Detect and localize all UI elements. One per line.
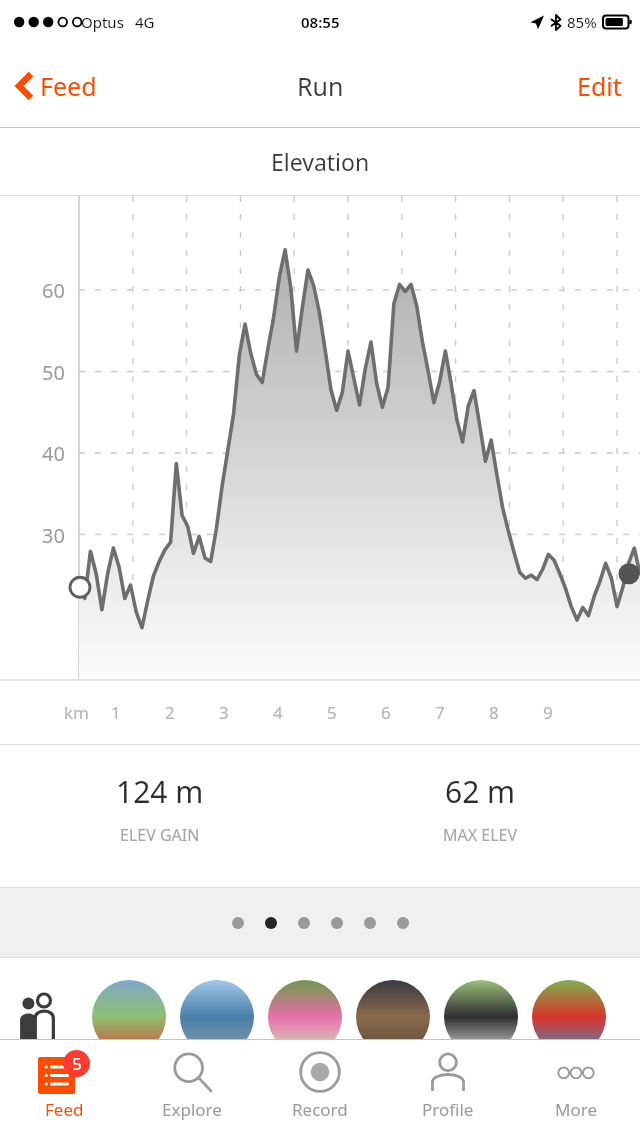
button[interactable] xyxy=(331,917,343,929)
button[interactable]: Athlete xyxy=(532,980,606,1054)
staticText: 5 xyxy=(72,1052,82,1075)
staticText: 124 m xyxy=(116,771,204,812)
staticText: 4G xyxy=(135,12,155,32)
staticText: 08:55 xyxy=(301,12,340,32)
button[interactable]: Athlete xyxy=(356,980,430,1054)
staticText: Explore xyxy=(162,1098,222,1121)
button[interactable]: Athlete xyxy=(180,980,254,1054)
button[interactable]: Feed xyxy=(10,61,103,111)
staticText: 50 xyxy=(42,359,65,386)
button[interactable]: 5 xyxy=(0,1040,128,1136)
staticText: 40 xyxy=(42,440,65,467)
button[interactable]: 62 m xyxy=(320,745,640,873)
staticText: Run xyxy=(297,69,344,103)
staticText: MAX ELEV xyxy=(443,824,518,846)
staticText: Optus xyxy=(81,12,124,32)
staticText: More xyxy=(555,1098,597,1121)
staticText: Edit xyxy=(577,69,622,103)
staticText: 62 m xyxy=(445,771,516,812)
button[interactable] xyxy=(397,917,409,929)
button[interactable]: Record xyxy=(256,1040,384,1136)
staticText: 30 xyxy=(42,522,65,549)
button[interactable] xyxy=(364,917,376,929)
button[interactable]: 124 m xyxy=(0,745,320,873)
button[interactable]: Kudos xyxy=(18,978,80,1040)
button[interactable]: Athlete xyxy=(268,980,342,1054)
staticText: Feed xyxy=(40,69,97,103)
staticText: Record xyxy=(292,1098,348,1121)
staticText: 9 xyxy=(543,701,553,724)
button[interactable]: More xyxy=(512,1040,640,1136)
staticText: 60 xyxy=(42,277,65,304)
staticText: 6 xyxy=(381,701,391,724)
button[interactable]: Edit xyxy=(571,61,628,111)
staticText: 1 xyxy=(111,701,121,724)
staticText: km xyxy=(64,701,89,724)
button[interactable]: Athlete xyxy=(444,980,518,1054)
other: Record xyxy=(299,1051,341,1093)
other: Explore xyxy=(171,1051,213,1093)
staticText: 3 xyxy=(219,701,229,724)
button[interactable] xyxy=(298,917,310,929)
button[interactable]: Explore xyxy=(128,1040,256,1136)
button[interactable]: Athlete xyxy=(92,980,166,1054)
staticText: 4 xyxy=(273,701,283,724)
staticText: 2 xyxy=(165,701,175,724)
other: More xyxy=(554,1051,598,1093)
staticText: Elevation xyxy=(271,146,370,177)
staticText: 7 xyxy=(435,701,445,724)
staticText: 85% xyxy=(567,12,597,32)
staticText: ELEV GAIN xyxy=(120,824,200,846)
staticText: Profile xyxy=(422,1098,474,1121)
button[interactable] xyxy=(265,917,277,929)
staticText: 8 xyxy=(489,701,499,724)
staticText: Feed xyxy=(45,1098,84,1121)
other: Profile xyxy=(427,1051,469,1093)
staticText: 5 xyxy=(327,701,337,724)
button[interactable] xyxy=(232,917,244,929)
button[interactable]: Profile xyxy=(384,1040,512,1136)
